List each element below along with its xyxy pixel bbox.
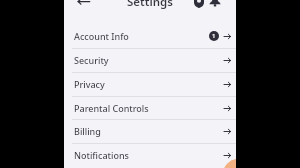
button[interactable]: Notifications xyxy=(64,143,236,167)
staticText: Privacy xyxy=(74,78,105,90)
button[interactable]: Notifications xyxy=(209,0,221,8)
staticText: Security xyxy=(74,54,109,66)
staticText: 1 xyxy=(212,32,216,40)
staticText: Parental Controls xyxy=(74,102,149,114)
button[interactable]: Security shield xyxy=(193,0,205,8)
button[interactable]: Back xyxy=(75,0,93,10)
staticText: Notifications xyxy=(74,149,129,161)
button[interactable]: Account Info xyxy=(64,24,236,48)
button[interactable]: Billing xyxy=(64,119,236,143)
staticText: Account Info xyxy=(74,30,129,42)
button[interactable]: Security xyxy=(64,48,236,72)
button[interactable]: Parental Controls xyxy=(64,96,236,120)
staticText: Settings xyxy=(127,0,173,10)
button[interactable]: Add xyxy=(223,159,236,168)
button[interactable]: Privacy xyxy=(64,72,236,96)
staticText: Billing xyxy=(74,125,101,137)
